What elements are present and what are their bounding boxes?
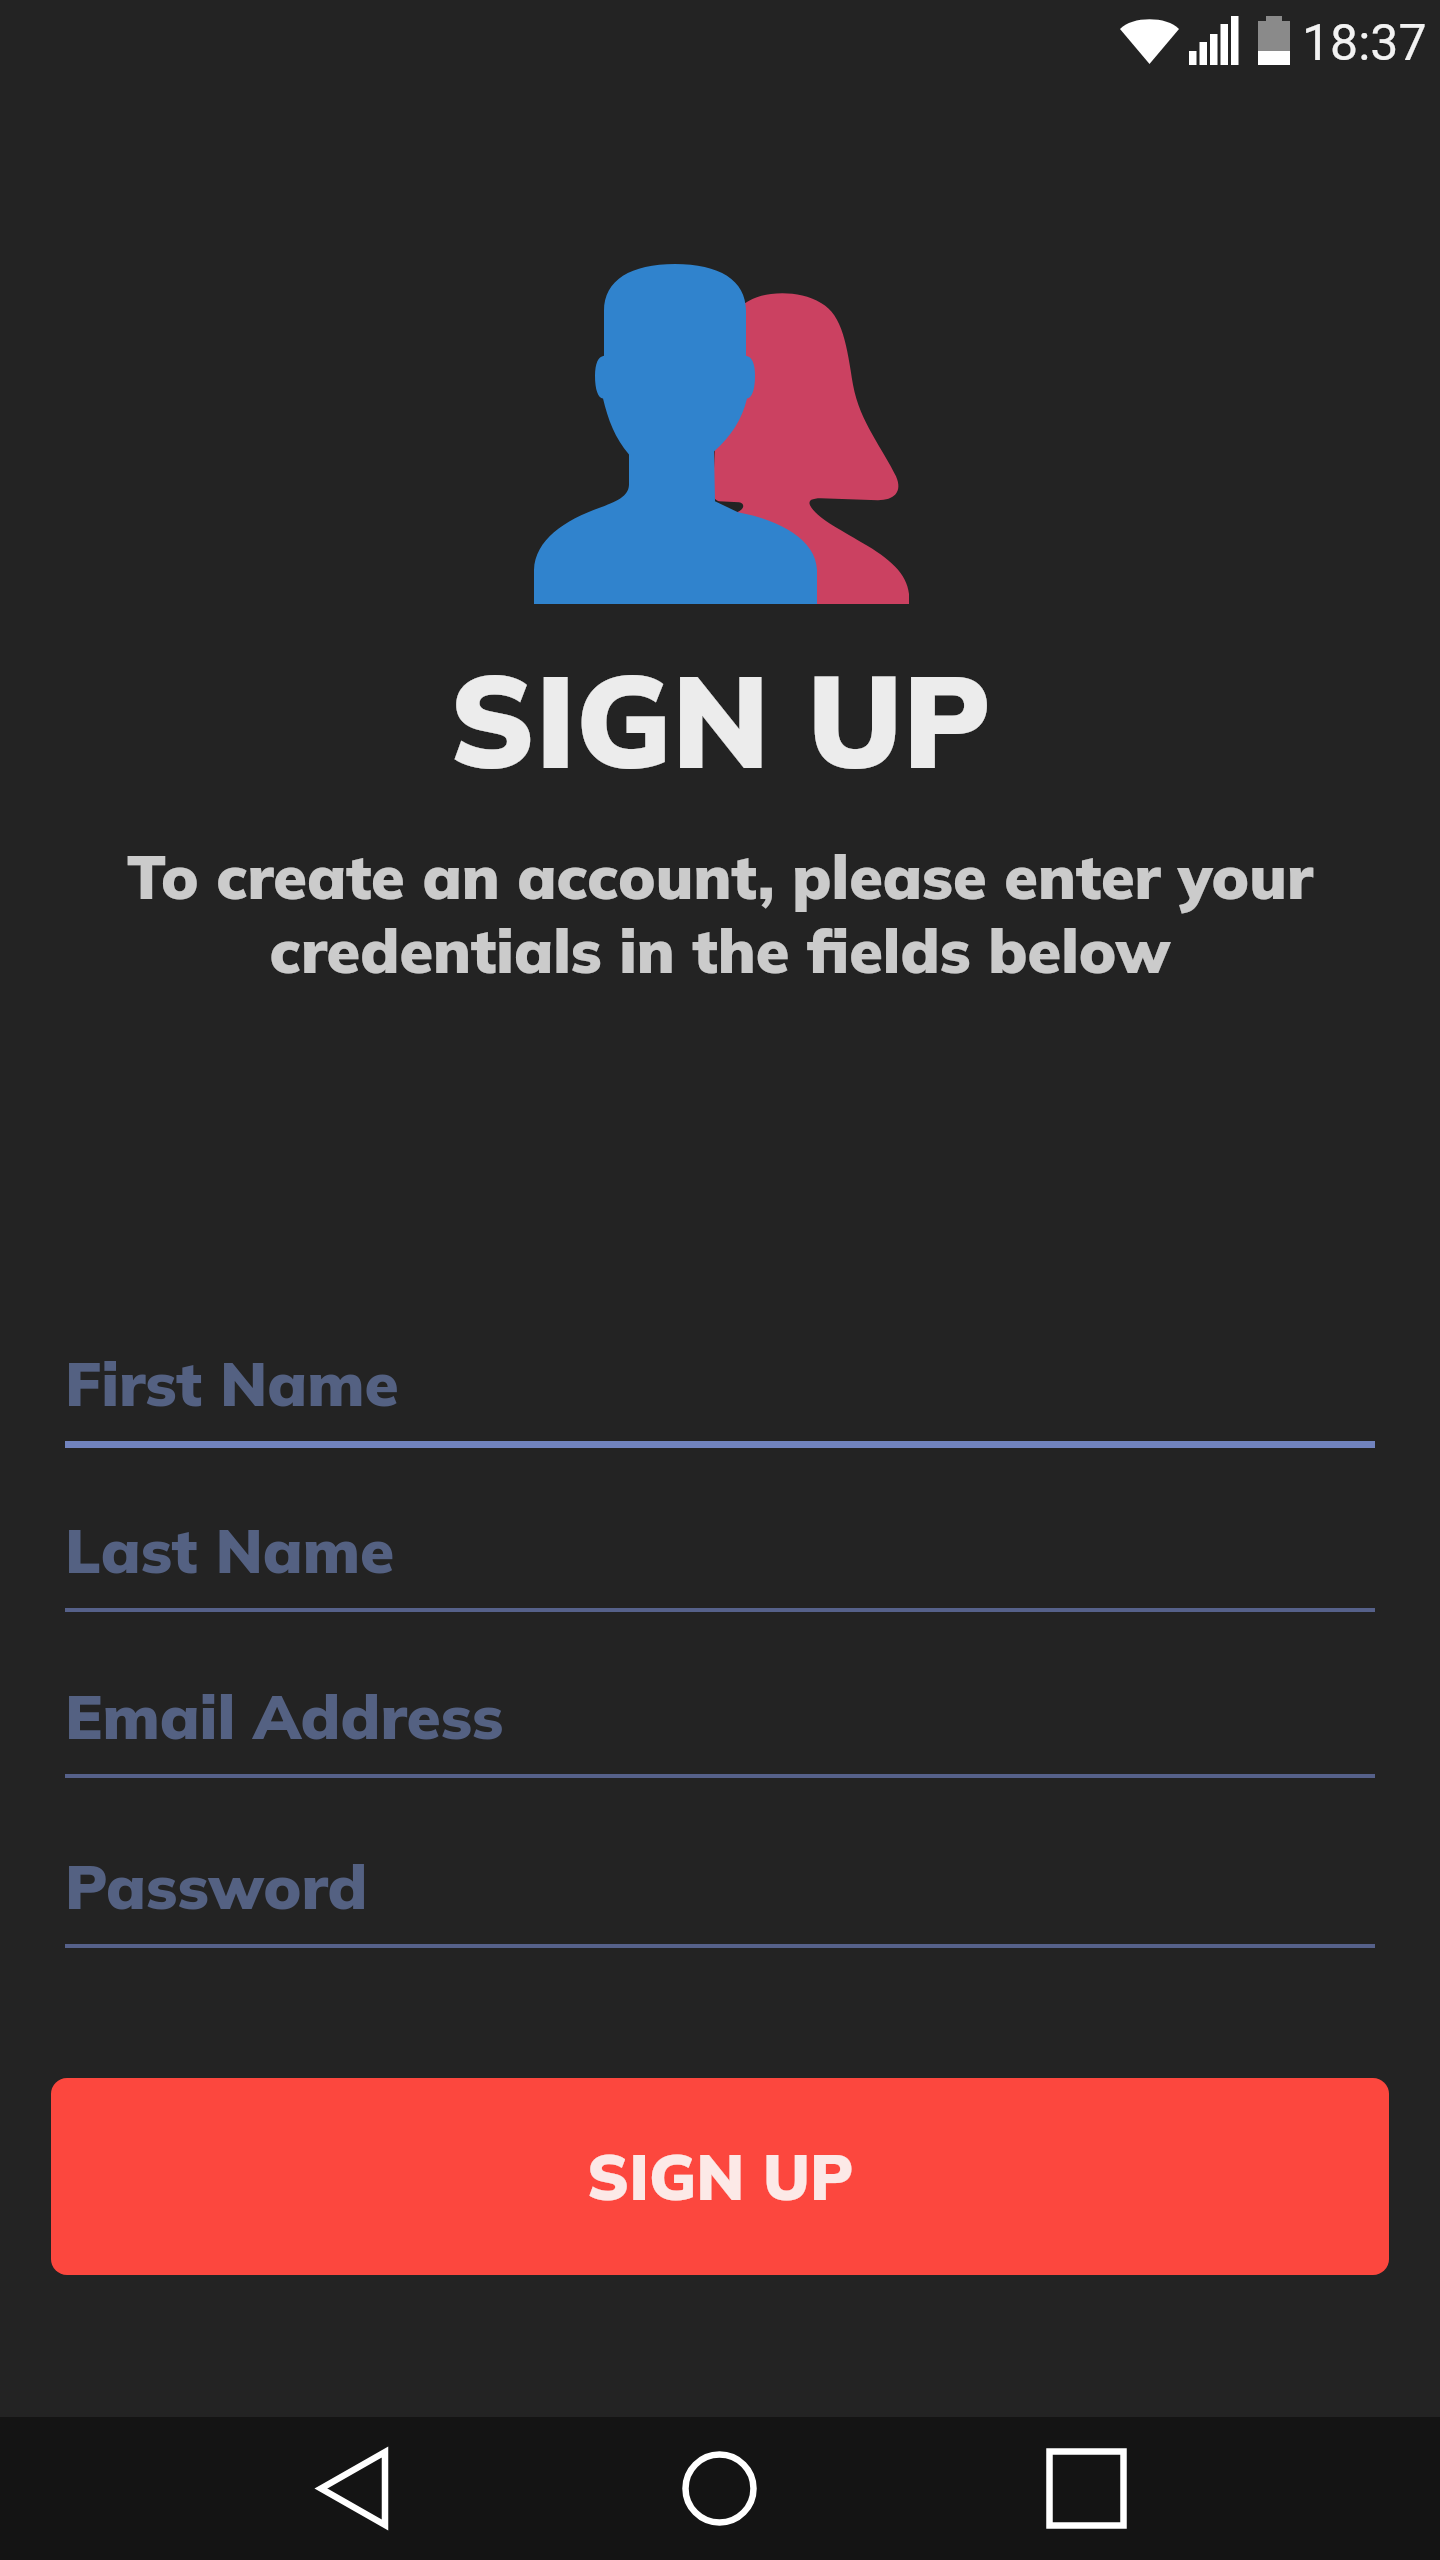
button[interactable]: Recent apps [1015, 2417, 1158, 2560]
button[interactable]: First Name [65, 1344, 1375, 1448]
staticText: To create an account, please enter your … [60, 838, 1380, 989]
staticText: SIGN UP [587, 2137, 854, 2216]
staticText: 18:37 [1302, 14, 1427, 73]
button[interactable]: Last Name [65, 1511, 1375, 1612]
button[interactable]: Email Address [65, 1677, 1375, 1778]
staticText: Email Address [65, 1677, 504, 1755]
button[interactable]: Back [281, 2417, 424, 2560]
staticText: First Name [65, 1344, 399, 1422]
button[interactable]: SIGN UP [51, 2078, 1389, 2275]
staticText: SIGN UP [0, 639, 1440, 800]
staticText: Last Name [65, 1511, 395, 1589]
button[interactable]: Home [648, 2417, 791, 2560]
button[interactable]: Password [65, 1847, 1375, 1948]
staticText: Password [65, 1847, 368, 1925]
